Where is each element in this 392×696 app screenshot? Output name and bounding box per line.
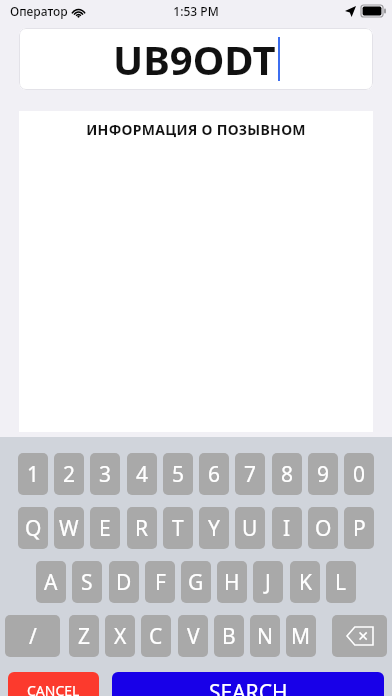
staticText: Оператор [10,3,68,19]
button[interactable]: C [141,615,171,657]
button[interactable]: L [326,561,356,603]
staticText: J [265,568,271,597]
staticText: N [257,622,273,651]
button[interactable]: Backspace [332,615,387,657]
button[interactable]: Q [18,507,48,549]
button[interactable]: Z [69,615,99,657]
button[interactable]: V [178,615,208,657]
staticText: B [222,622,236,651]
staticText: 9 [317,460,330,489]
button[interactable]: E [90,507,120,549]
staticText: H [224,568,240,597]
staticText: 1 [27,460,40,489]
button[interactable]: P [344,507,374,549]
staticText: ИНФОРМАЦИЯ О ПОЗЫВНОМ [19,120,373,139]
button[interactable]: F [145,561,175,603]
staticText: P [353,514,366,543]
staticText: 1:53 PM [0,3,392,19]
staticText: UB9ODT [113,32,276,86]
staticText: U [242,514,258,543]
staticText: O [315,514,332,543]
staticText: X [114,622,127,651]
button[interactable]: I [272,507,302,549]
button[interactable]: X [105,615,135,657]
staticText: A [44,568,58,597]
button[interactable]: UB9ODT [19,28,373,90]
staticText: S [81,568,93,597]
staticText: 8 [281,460,294,489]
button[interactable]: O [308,507,338,549]
staticText: K [299,568,312,597]
staticText: E [99,514,111,543]
button[interactable]: 3 [90,453,120,495]
button[interactable]: Y [199,507,229,549]
button[interactable]: 2 [54,453,84,495]
staticText: D [116,568,132,597]
button[interactable]: CANCEL [8,672,99,696]
staticText: Q [25,514,42,543]
button[interactable]: N [250,615,280,657]
staticText: W [59,514,79,543]
button[interactable]: U [235,507,265,549]
button[interactable]: 5 [163,453,193,495]
staticText: V [187,622,200,651]
staticText: 7 [244,460,257,489]
staticText: 0 [353,460,366,489]
staticText: G [188,568,204,597]
staticText: 3 [99,460,112,489]
button[interactable]: R [127,507,157,549]
button[interactable]: D [109,561,139,603]
button[interactable]: 9 [308,453,338,495]
button[interactable]: / [5,615,60,657]
staticText: 6 [208,460,221,489]
button[interactable]: 8 [272,453,302,495]
staticText: / [29,622,37,651]
staticText: 2 [63,460,76,489]
staticText: Y [208,514,220,543]
staticText: CANCEL [27,681,80,696]
button[interactable]: S [72,561,102,603]
button[interactable]: 4 [127,453,157,495]
staticText: T [172,514,184,543]
staticText: R [135,514,149,543]
button[interactable]: A [36,561,66,603]
button[interactable]: SEARCH [112,672,384,696]
button[interactable]: 1 [18,453,48,495]
button[interactable]: W [54,507,84,549]
staticText: L [335,568,347,597]
button[interactable]: 6 [199,453,229,495]
button[interactable]: 0 [344,453,374,495]
button[interactable]: 7 [235,453,265,495]
button[interactable]: G [181,561,211,603]
button[interactable]: K [290,561,320,603]
staticText: M [291,622,311,651]
button[interactable]: B [214,615,244,657]
button[interactable]: H [217,561,247,603]
staticText: SEARCH [209,678,288,696]
button[interactable]: T [163,507,193,549]
staticText: 4 [136,460,149,489]
staticText: Z [78,622,91,651]
staticText: F [155,568,166,597]
button[interactable]: J [253,561,283,603]
staticText: 5 [172,460,185,489]
button[interactable]: M [286,615,316,657]
staticText: C [149,622,163,651]
staticText: I [283,514,291,543]
